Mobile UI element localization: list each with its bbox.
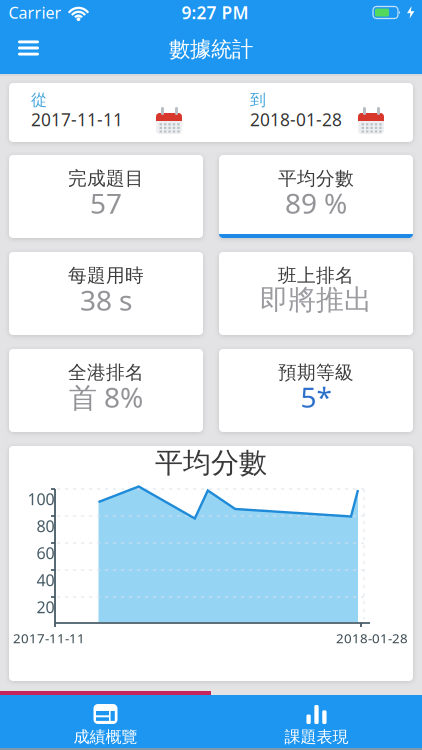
staticText: 2018-01-28 bbox=[250, 108, 342, 131]
staticText: 完成題目 bbox=[68, 167, 144, 190]
staticText: 40 bbox=[36, 569, 54, 591]
button[interactable]: 每題用時 bbox=[9, 252, 203, 335]
button[interactable]: 完成題目 bbox=[9, 155, 203, 238]
staticText: Carrier bbox=[8, 2, 61, 23]
staticText: 班上排名 bbox=[278, 264, 354, 287]
staticText: 80 bbox=[36, 515, 54, 537]
button[interactable]: 班上排名 bbox=[219, 252, 413, 335]
staticText: 平均分數 bbox=[155, 446, 267, 480]
staticText: 全港排名 bbox=[68, 361, 144, 384]
staticText: 2017-11-11 bbox=[31, 108, 123, 131]
staticText: 60 bbox=[36, 542, 54, 564]
staticText: 100 bbox=[27, 488, 54, 510]
staticText: 預期等級 bbox=[278, 361, 354, 384]
staticText: 成績概覽 bbox=[73, 727, 137, 747]
staticText: 課題表現 bbox=[284, 727, 348, 747]
staticText: 20 bbox=[36, 596, 54, 618]
staticText: 每題用時 bbox=[68, 264, 144, 287]
staticText: 即將推出 bbox=[260, 283, 372, 317]
staticText: 5* bbox=[300, 378, 331, 416]
staticText: 從 bbox=[31, 90, 47, 110]
staticText: 數據統計 bbox=[169, 36, 253, 63]
button[interactable] bbox=[0, 34, 39, 65]
button[interactable]: 課題表現 bbox=[211, 695, 422, 750]
staticText: 平均分數 bbox=[278, 167, 354, 190]
staticText: 首 8% bbox=[69, 378, 143, 416]
button[interactable]: 預期等級 bbox=[219, 349, 413, 432]
staticText: 到 bbox=[250, 90, 266, 110]
staticText: 9:27 PM bbox=[181, 1, 248, 24]
staticText: 89 % bbox=[285, 184, 347, 222]
button[interactable]: 全港排名 bbox=[9, 349, 203, 432]
button[interactable]: 到 bbox=[211, 83, 413, 142]
staticText: 2018-01-28 bbox=[336, 629, 408, 647]
staticText: 38 s bbox=[80, 281, 132, 319]
button[interactable]: 成績概覽 bbox=[0, 695, 211, 750]
button[interactable]: 平均分數 bbox=[219, 155, 413, 238]
staticText: 2017-11-11 bbox=[13, 629, 85, 647]
staticText: 57 bbox=[90, 184, 122, 222]
button[interactable]: 從 bbox=[9, 83, 211, 142]
